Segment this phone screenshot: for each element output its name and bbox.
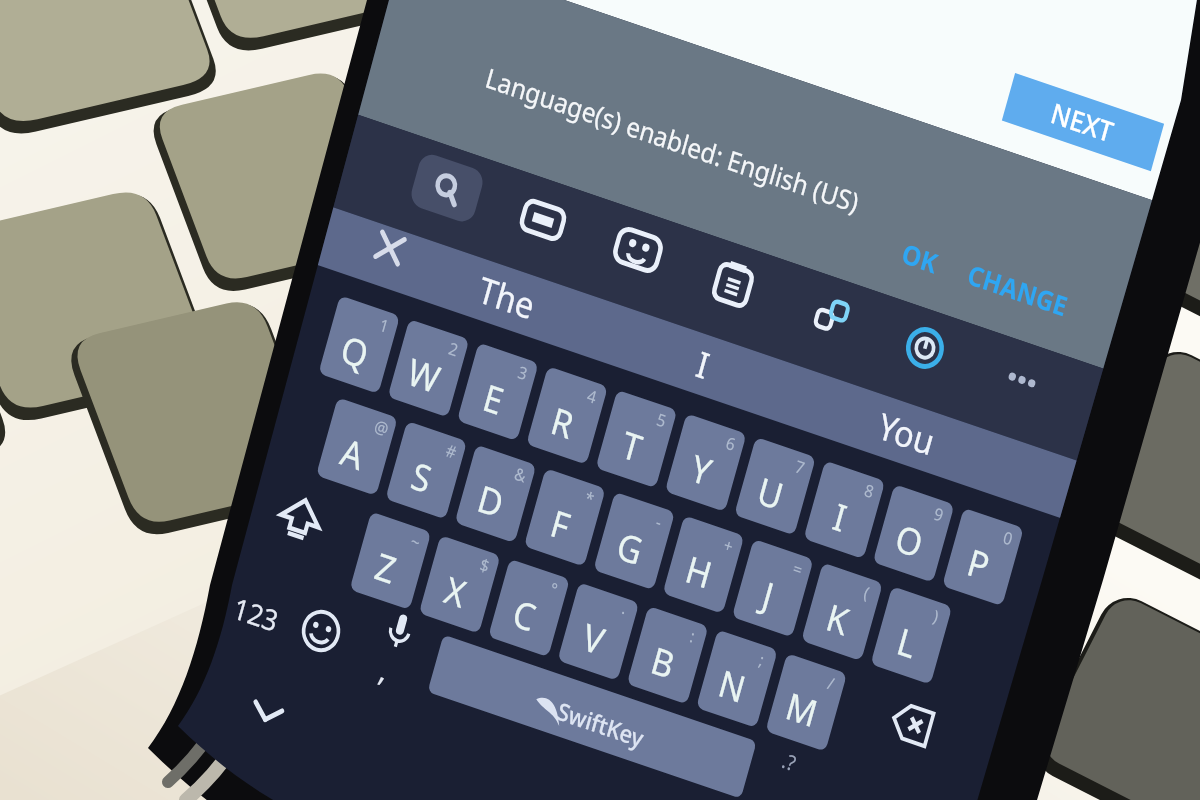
button[interactable]: SwiftKey keyboard shown on a phone lying… bbox=[0, 0, 1200, 800]
